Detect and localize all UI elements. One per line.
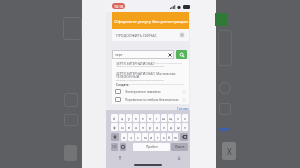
button[interactable]: Shift: [111, 133, 119, 141]
button[interactable]: ы: [119, 123, 125, 131]
button[interactable]: е: [140, 114, 146, 122]
button[interactable]: и: [149, 133, 154, 141]
button[interactable]: х: [182, 114, 188, 122]
staticText: Электронные таможни: [125, 90, 161, 94]
staticText: ц: [121, 116, 124, 121]
staticText: й: [113, 116, 116, 121]
staticText: 10:18: [114, 4, 124, 9]
staticText: Оформите услугу без регистрации: [114, 18, 188, 24]
button[interactable]: 123: [111, 143, 118, 151]
button[interactable]: ПРОДОЛЖИТЬ СЕЙЧАС: [112, 29, 189, 41]
button[interactable]: а: [133, 123, 139, 131]
button[interactable]: в: [126, 123, 132, 131]
staticText: п: [142, 125, 145, 130]
button[interactable]: ж: [175, 123, 181, 131]
button[interactable]: Электронные таможни: [112, 87, 189, 96]
staticText: ь: [163, 135, 165, 140]
button[interactable]: н: [147, 114, 153, 122]
button[interactable]: г: [154, 114, 160, 122]
button[interactable]: Диктовка: [117, 155, 122, 160]
button[interactable]: ь: [161, 133, 166, 141]
staticText: а: [135, 125, 137, 130]
button[interactable]: Перевозки по любым безопасным: [112, 95, 189, 104]
staticText: з: [177, 116, 179, 121]
staticText: Перевозки по любым безопасным: [125, 98, 179, 102]
staticText: б: [168, 135, 171, 140]
staticText: ЗЕРТЯ ЗИТЕРНАТИОНАЛ, Московская: [116, 71, 176, 75]
staticText: е: [142, 116, 144, 121]
staticText: х: [184, 116, 186, 121]
staticText: р: [149, 125, 152, 130]
button[interactable]: зерт: [112, 50, 174, 59]
button[interactable]: п: [140, 123, 146, 131]
staticText: общество с ограниченной ответственностью: [116, 79, 164, 82]
staticText: общество с ограниченной ответственностью: [116, 65, 164, 68]
staticText: ТЕЛЕФОННЫЙ: [116, 74, 140, 78]
staticText: Пробел: [146, 145, 158, 149]
staticText: X: [227, 146, 232, 157]
staticText: э: [184, 125, 186, 130]
staticText: ж: [177, 125, 180, 130]
button[interactable]: к: [133, 114, 139, 122]
button[interactable]: я: [121, 133, 127, 141]
staticText: т: [157, 135, 159, 140]
staticText: я: [123, 135, 126, 140]
staticText: щ: [169, 116, 173, 121]
button[interactable]: ш: [161, 114, 167, 122]
staticText: у: [128, 116, 130, 121]
button[interactable]: ЗЕРТЯ ЗИТЕРНАТИОНАЛ: [112, 60, 189, 70]
button[interactable]: с: [135, 133, 141, 141]
staticText: Поиск: [175, 145, 185, 149]
button[interactable]: ц: [119, 114, 125, 122]
staticText: о: [156, 125, 159, 130]
staticText: ы: [121, 125, 124, 130]
staticText: с: [137, 135, 139, 140]
button[interactable]: Пробел: [133, 143, 170, 151]
button[interactable]: Поиск: [171, 143, 188, 151]
staticText: в: [128, 125, 131, 130]
button[interactable]: э: [182, 123, 188, 131]
staticText: ш: [162, 116, 166, 121]
staticText: ф: [113, 125, 116, 130]
button[interactable]: т: [155, 133, 160, 141]
staticText: и: [150, 135, 153, 140]
staticText: к: [135, 116, 137, 121]
button[interactable]: Скрыть клавиатуру: [176, 155, 181, 160]
button[interactable]: о: [154, 123, 160, 131]
button[interactable]: щ: [168, 114, 174, 122]
staticText: ПРОДОЛЖИТЬ СЕЙЧАС: [116, 33, 157, 38]
button[interactable]: Оформите услугу без регистрации: [112, 12, 189, 30]
button[interactable]: м: [142, 133, 148, 141]
button[interactable]: б: [167, 133, 172, 141]
button[interactable]: Emoji: [120, 143, 126, 151]
button[interactable]: ю: [173, 133, 178, 141]
staticText: 123: [112, 145, 117, 149]
staticText: ю: [174, 135, 177, 140]
staticText: м: [144, 135, 147, 140]
button[interactable]: з: [175, 114, 181, 122]
staticText: л: [163, 125, 166, 130]
staticText: н: [149, 116, 152, 121]
button[interactable]: Backspace: [180, 133, 188, 141]
staticText: д: [170, 125, 173, 130]
staticText: ч: [130, 135, 133, 140]
other: Очистить: [168, 53, 172, 57]
button[interactable]: л: [161, 123, 167, 131]
button[interactable]: р: [147, 123, 153, 131]
button[interactable]: д: [168, 123, 174, 131]
staticText: зерт: [115, 52, 123, 57]
button[interactable]: ф: [111, 123, 118, 131]
staticText: Создать: [116, 83, 129, 87]
staticText: Готово: [177, 106, 189, 111]
button[interactable]: й: [111, 114, 118, 122]
staticText: ЗЕРТЯ ЗИТЕРНАТИОНАЛ: [116, 61, 155, 65]
button[interactable]: у: [126, 114, 132, 122]
button[interactable]: Найти: [176, 50, 187, 59]
button[interactable]: ЗЕРТЯ ЗИТЕРНАТИОНАЛ, Московская: [112, 70, 189, 82]
button[interactable]: Готово: [168, 105, 189, 111]
staticText: г: [156, 116, 158, 121]
button[interactable]: ч: [128, 133, 134, 141]
